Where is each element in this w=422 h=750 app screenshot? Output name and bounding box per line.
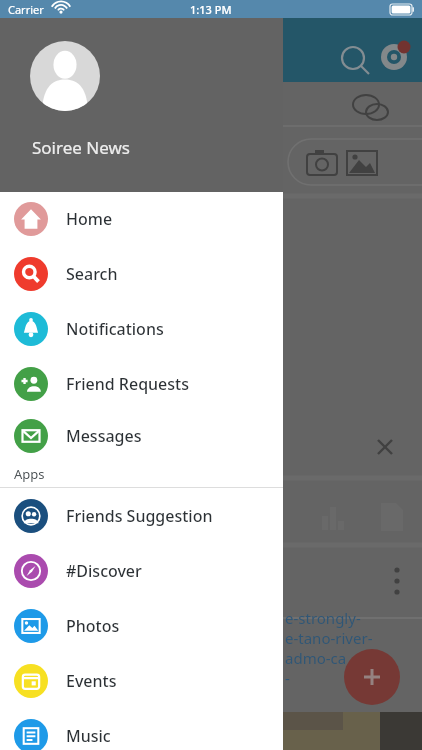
staticText: Home (66, 208, 113, 230)
button[interactable]: Friends Suggestion (0, 488, 283, 543)
button[interactable]: Home (0, 192, 283, 246)
staticText: Soiree News (32, 136, 130, 159)
staticText: e-strongly- (285, 608, 361, 628)
staticText: - (285, 668, 290, 688)
staticText: Messages (66, 425, 142, 447)
staticText: Music (66, 725, 111, 747)
button[interactable]: Create post (344, 649, 400, 705)
button[interactable]: Soiree News (0, 18, 283, 192)
staticText: Notifications (66, 318, 164, 340)
button[interactable]: Photos (0, 598, 283, 653)
staticText: 1:13 PM (190, 2, 232, 17)
button[interactable]: #Discover (0, 543, 283, 598)
staticText: Friend Requests (66, 373, 189, 395)
staticText: Apps (14, 465, 45, 483)
button[interactable]: Music (0, 708, 283, 750)
staticText: Events (66, 670, 117, 692)
staticText: Search (66, 263, 118, 285)
staticText: #Discover (66, 560, 142, 582)
staticText: Friends Suggestion (66, 505, 213, 527)
staticText: e-tano-river- (285, 628, 373, 648)
staticText: Photos (66, 615, 120, 637)
button[interactable]: Search (0, 246, 283, 301)
button[interactable]: Messages (0, 411, 283, 461)
button[interactable]: Events (0, 653, 283, 708)
button[interactable]: Friend Requests (0, 356, 283, 411)
button[interactable]: Notifications (0, 301, 283, 356)
staticText: Carrier (8, 2, 44, 17)
staticText: admo-ca (285, 648, 347, 668)
